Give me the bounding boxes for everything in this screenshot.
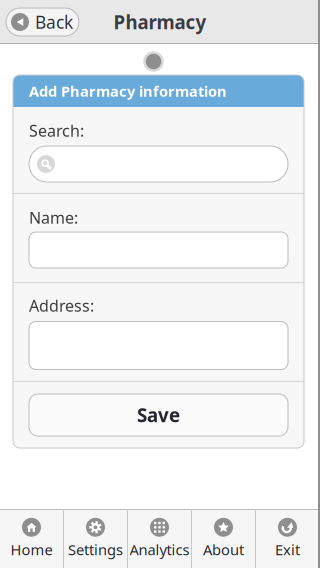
staticText: Exit (275, 540, 300, 559)
button[interactable]: Home (0, 509, 63, 567)
button[interactable]: Settings (64, 509, 127, 567)
staticText: Home (10, 540, 52, 559)
staticText: Search: (29, 120, 84, 141)
staticText: Add Pharmacy information (29, 81, 227, 101)
staticText: Back (35, 10, 73, 33)
button[interactable]: Exit (256, 509, 319, 567)
staticText: About (203, 540, 244, 559)
staticText: Settings (68, 540, 123, 559)
button[interactable]: Back (6, 8, 79, 36)
button[interactable]: Save (29, 394, 288, 436)
staticText: Analytics (129, 540, 189, 559)
button[interactable]: About (192, 509, 255, 567)
staticText: Name: (29, 207, 78, 228)
staticText: Pharmacy (113, 10, 206, 34)
staticText: Save (137, 403, 180, 427)
button[interactable]: Analytics (128, 509, 191, 567)
staticText: Address: (29, 295, 94, 316)
